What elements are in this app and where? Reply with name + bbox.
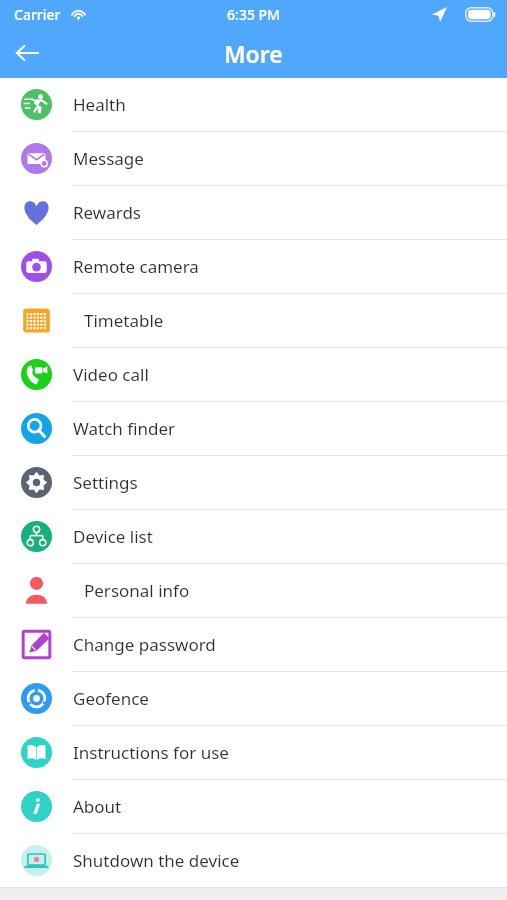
staticText: Rewards xyxy=(73,201,141,224)
staticText: More xyxy=(224,38,283,69)
staticText: Remote camera xyxy=(73,255,199,278)
button[interactable]: Personal info xyxy=(0,564,507,618)
staticText: Video call xyxy=(73,363,149,386)
staticText: Device list xyxy=(73,525,153,548)
button[interactable]: Health xyxy=(0,78,507,132)
button[interactable]: Shutdown the device xyxy=(0,834,507,887)
button[interactable]: Instructions for use xyxy=(0,726,507,780)
staticText: Personal info xyxy=(84,579,190,602)
staticText: Carrier xyxy=(14,5,61,24)
staticText: Shutdown the device xyxy=(73,849,240,872)
staticText: Health xyxy=(73,93,126,116)
button[interactable]: Device list xyxy=(0,510,507,564)
button[interactable]: Watch finder xyxy=(0,402,507,456)
staticText: Geofence xyxy=(73,687,149,710)
button[interactable]: Rewards xyxy=(0,186,507,240)
staticText: Timetable xyxy=(84,309,164,332)
staticText: Settings xyxy=(73,471,138,494)
button[interactable]: Geofence xyxy=(0,672,507,726)
staticText: Message xyxy=(73,147,144,170)
button[interactable]: Message xyxy=(0,132,507,186)
button[interactable]: Timetable xyxy=(0,294,507,348)
staticText: About xyxy=(73,795,122,818)
button[interactable]: Settings xyxy=(0,456,507,510)
staticText: Watch finder xyxy=(73,417,176,440)
button[interactable]: Video call xyxy=(0,348,507,402)
button[interactable]: Remote camera xyxy=(0,240,507,294)
staticText: Change password xyxy=(73,633,216,656)
button[interactable]: Back xyxy=(0,28,54,78)
button[interactable]: Change password xyxy=(0,618,507,672)
button[interactable]: About xyxy=(0,780,507,834)
staticText: 6:35 PM xyxy=(227,5,280,24)
staticText: Instructions for use xyxy=(73,741,229,764)
